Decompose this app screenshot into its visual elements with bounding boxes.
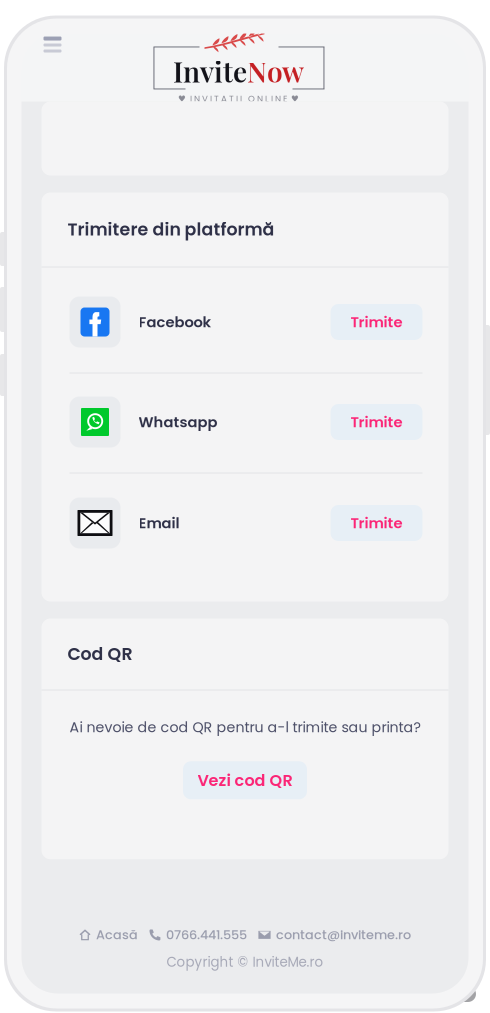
- staticText: Email: [138, 513, 179, 533]
- staticText: Invite: [173, 52, 247, 90]
- staticText: Acasă: [96, 926, 138, 944]
- button[interactable]: Vezi cod QR: [183, 761, 307, 799]
- staticText: ♥ I N V I T A Ț I I O N L I N E ♥: [178, 93, 299, 105]
- button[interactable]: Trimite: [330, 304, 422, 340]
- staticText: Facebook: [138, 312, 211, 332]
- staticText: 0766.441.555: [166, 926, 247, 944]
- staticText: Cod QR: [67, 642, 132, 666]
- staticText: Copyright © InviteMe.ro: [166, 953, 323, 971]
- staticText: Vezi cod QR: [197, 769, 292, 791]
- staticText: Trimite: [350, 412, 402, 432]
- staticText: Trimite: [350, 312, 402, 332]
- button[interactable]: Trimite: [330, 404, 422, 440]
- staticText: Now: [247, 52, 304, 90]
- staticText: Trimitere din platformă: [67, 217, 274, 242]
- staticText: Trimite: [350, 513, 402, 533]
- staticText: contact@inviteme.ro: [276, 926, 411, 944]
- button[interactable]: 0766.441.555: [149, 926, 247, 944]
- staticText: Ai nevoie de cod QR pentru a-l trimite s…: [69, 717, 420, 737]
- button[interactable]: Acasă: [79, 926, 138, 944]
- staticText: Whatsapp: [138, 412, 217, 432]
- button[interactable]: contact@inviteme.ro: [258, 926, 411, 944]
- button[interactable]: Open menu: [40, 32, 64, 56]
- button[interactable]: Trimite: [330, 505, 422, 541]
